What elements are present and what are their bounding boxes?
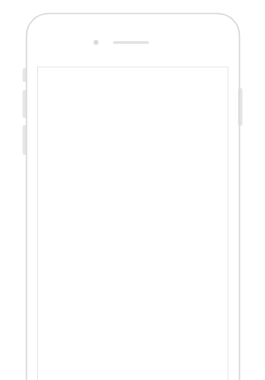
other: Phone device mockup — [0, 0, 265, 380]
